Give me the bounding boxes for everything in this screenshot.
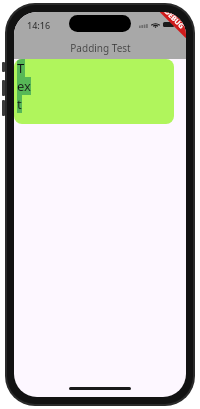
staticText: 14:16 [27, 19, 51, 31]
staticText: T [17, 59, 25, 77]
staticText: t [17, 95, 22, 113]
staticText: ex [17, 77, 31, 95]
button[interactable]: T [14, 59, 174, 124]
staticText: DEBUG [162, 12, 186, 32]
other: Debug banner [142, 12, 186, 56]
staticText: Padding Test [70, 41, 131, 55]
